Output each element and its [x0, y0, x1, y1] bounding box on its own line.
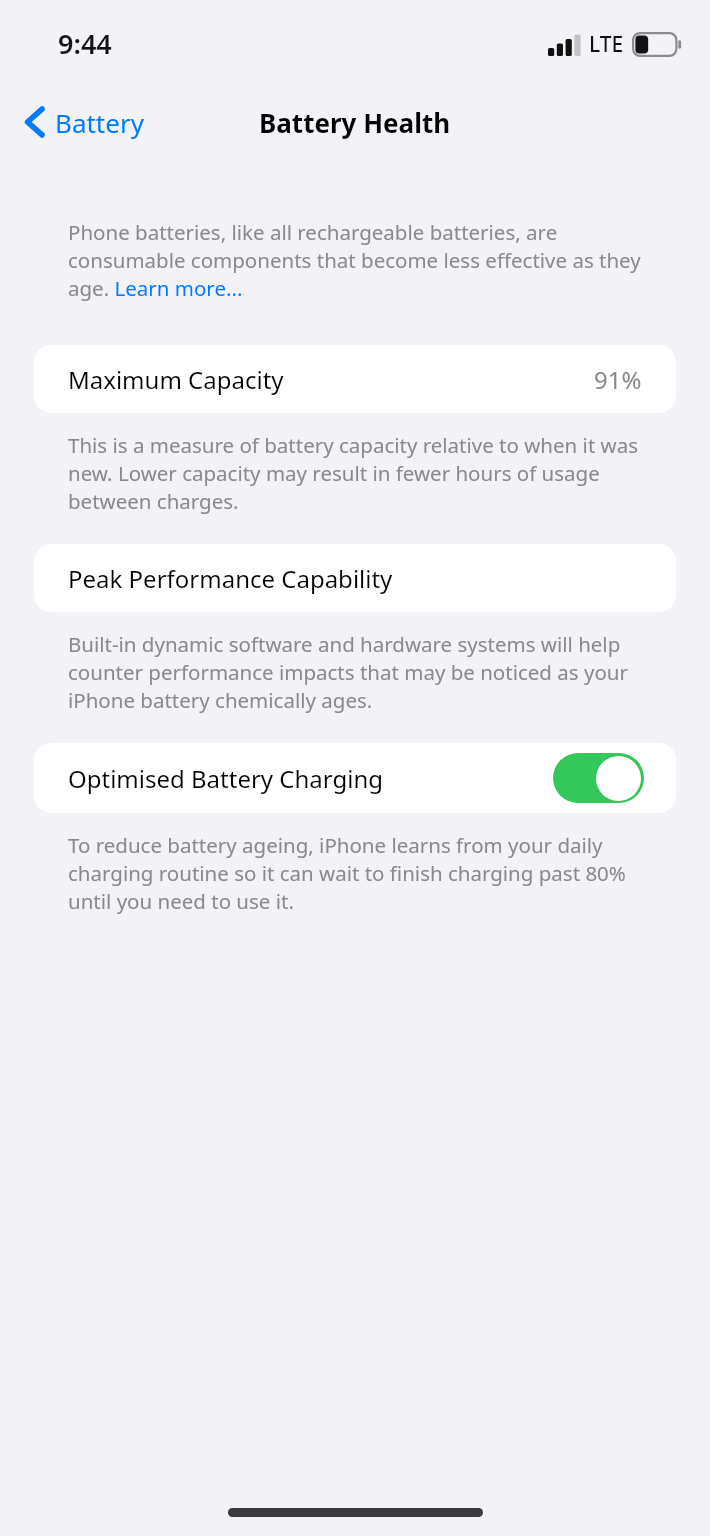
staticText: 91% [594, 363, 642, 396]
staticText: This is a measure of battery capacity re… [68, 431, 652, 515]
button[interactable]: Optimised Battery Charging [34, 743, 676, 813]
button[interactable]: Battery [18, 100, 150, 144]
staticText: Maximum Capacity [68, 363, 284, 396]
button[interactable]: Peak Performance Capability [34, 544, 676, 612]
staticText: Phone batteries, like all rechargeable b… [68, 218, 652, 302]
staticText: To reduce battery ageing, iPhone learns … [68, 831, 652, 915]
button[interactable]: Optimised Battery Charging toggle, on [553, 753, 644, 803]
staticText: Built-in dynamic software and hardware s… [68, 630, 652, 714]
staticText: Peak Performance Capability [68, 562, 393, 595]
staticText: Battery Health [259, 105, 451, 140]
button[interactable]: Maximum Capacity [34, 345, 676, 413]
staticText: Optimised Battery Charging [68, 762, 384, 795]
staticText: 9:44 [58, 25, 112, 62]
staticText: Battery [55, 105, 144, 140]
staticText: LTE [589, 30, 624, 59]
